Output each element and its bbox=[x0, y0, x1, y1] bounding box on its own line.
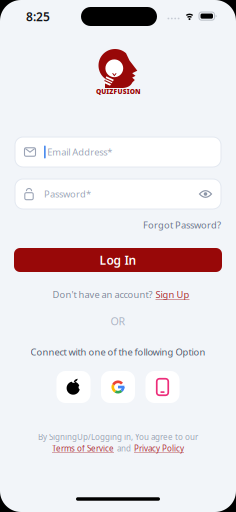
button[interactable]: Terms of Service bbox=[52, 443, 114, 454]
staticText: Email Address* bbox=[47, 146, 112, 158]
staticText: and bbox=[117, 443, 131, 454]
button[interactable]: Forgot Password? bbox=[143, 219, 221, 231]
button[interactable] bbox=[56, 371, 90, 403]
staticText: 8:25 bbox=[26, 8, 50, 24]
staticText: Log In bbox=[99, 252, 136, 268]
button[interactable]: Password* bbox=[15, 179, 221, 209]
button[interactable] bbox=[145, 371, 179, 403]
button[interactable]: Log In bbox=[14, 248, 222, 272]
staticText: Forgot Password? bbox=[143, 219, 221, 231]
staticText: OR bbox=[110, 314, 125, 328]
staticText: Sign Up bbox=[155, 288, 189, 301]
staticText: By SigningUp/Logging in, You agree to ou… bbox=[38, 432, 198, 442]
staticText: Privacy Policy bbox=[134, 443, 184, 454]
button[interactable]: Email Address* bbox=[15, 137, 221, 167]
button[interactable]: Sign Up bbox=[155, 288, 189, 301]
staticText: Terms of Service bbox=[52, 443, 114, 454]
staticText: Don't have an account? bbox=[52, 288, 152, 301]
staticText: QUIZFUSION bbox=[96, 87, 141, 96]
staticText: Connect with one of the following Option bbox=[30, 346, 205, 358]
button[interactable] bbox=[101, 371, 135, 403]
staticText: Password* bbox=[44, 188, 91, 200]
button[interactable]: Privacy Policy bbox=[134, 443, 184, 454]
